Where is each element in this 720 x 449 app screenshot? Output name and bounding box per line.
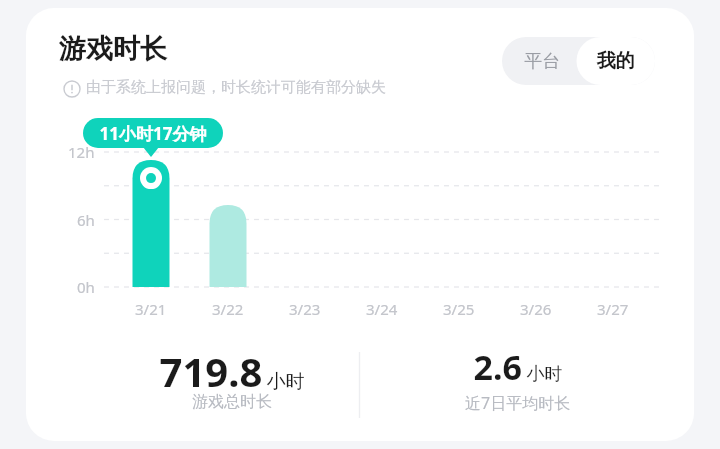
button[interactable]: 游戏时长统计卡片 [0,0,720,449]
